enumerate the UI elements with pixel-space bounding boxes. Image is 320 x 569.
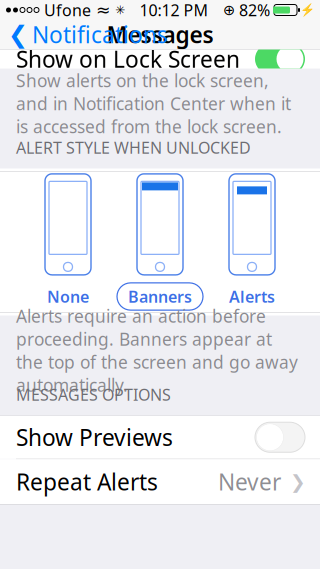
staticText: Notifications (32, 19, 168, 49)
staticText: 82% (239, 0, 270, 21)
button[interactable]: Repeat Alerts (0, 459, 320, 504)
staticText: ⚡ (300, 3, 315, 17)
staticText: ⊕ (223, 2, 235, 18)
staticText: Ufone (44, 0, 91, 21)
staticText: ALERT STYLE WHEN UNLOCKED (16, 137, 251, 158)
staticText: Banners (128, 286, 192, 307)
staticText: Show alerts on the lock screen, and in N… (16, 69, 291, 138)
staticText: Alerts require an action before proceedi… (16, 304, 298, 397)
staticText: Repeat Alerts (16, 467, 158, 497)
staticText: ✳ (115, 3, 125, 17)
staticText: Never (218, 467, 281, 497)
staticText: Alerts (229, 286, 275, 307)
button[interactable]: Alerts (206, 174, 298, 309)
staticText: ❮ (8, 21, 28, 48)
staticText: ≈ (96, 0, 111, 20)
button[interactable]: ❮ (0, 20, 176, 49)
staticText: None (47, 286, 89, 307)
staticText: 10:12 PM (139, 0, 208, 21)
staticText: ❯ (290, 471, 306, 492)
staticText: Messages (106, 19, 213, 49)
staticText: Show on Lock Screen (16, 44, 240, 74)
staticText: MESSAGES OPTIONS (16, 384, 171, 405)
button[interactable]: Show Previews (0, 416, 320, 459)
staticText: Show Previews (16, 422, 173, 452)
button[interactable]: None (22, 174, 114, 309)
button[interactable]: Banners (114, 174, 206, 309)
